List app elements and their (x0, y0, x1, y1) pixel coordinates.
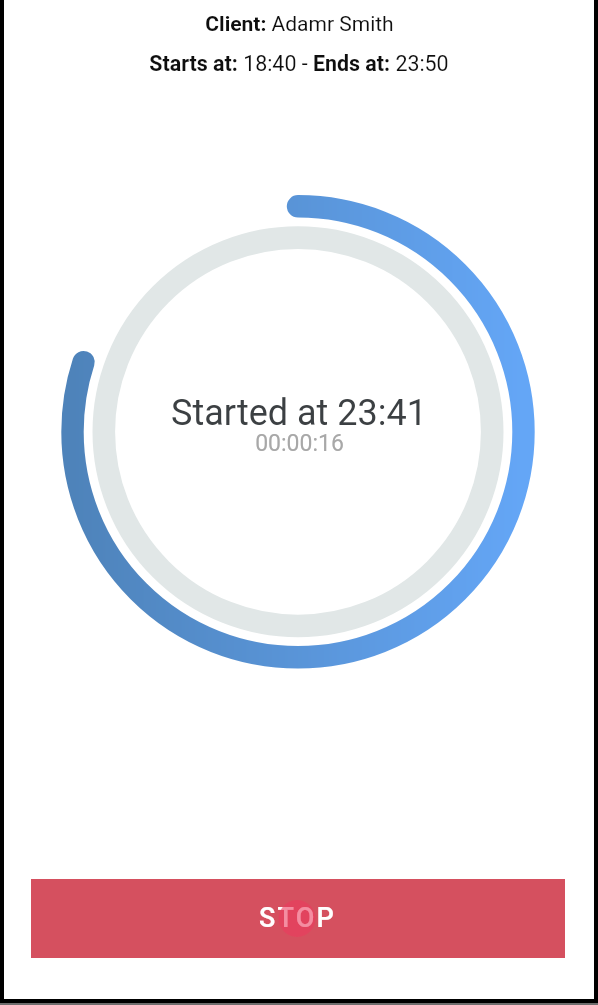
staticText: 00:00:16 (255, 430, 344, 457)
staticText: Starts at: 18:40 - Ends at: 23:50 (149, 51, 449, 76)
staticText: STOP (259, 902, 337, 934)
staticText: Started at 23:41 (171, 392, 427, 434)
staticText: Client: Adamr Smith (205, 12, 394, 37)
button[interactable]: STOP (31, 879, 565, 958)
